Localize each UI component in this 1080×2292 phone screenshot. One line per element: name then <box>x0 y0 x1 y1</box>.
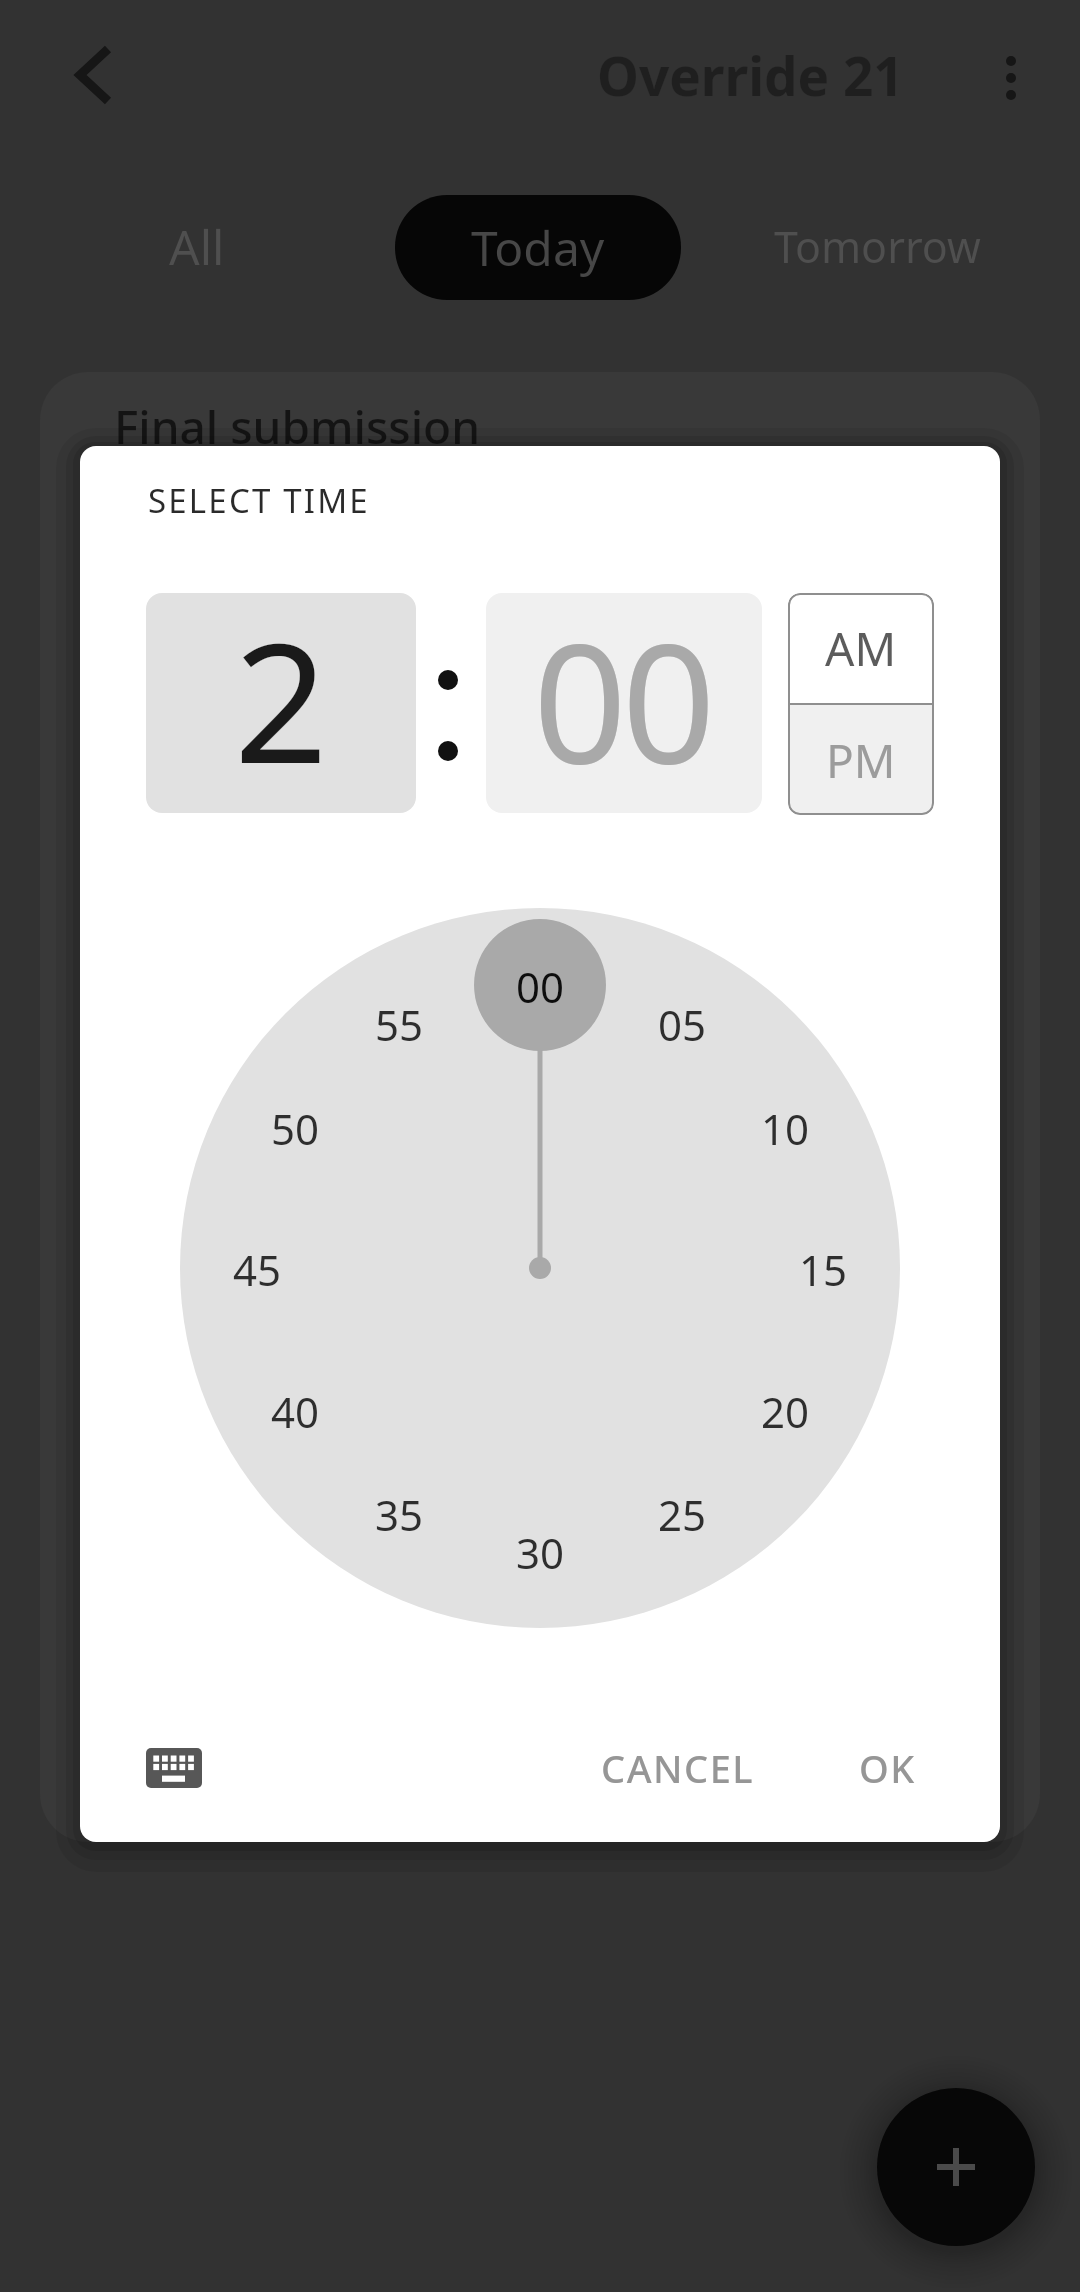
staticText: CANCEL <box>601 1742 755 1794</box>
button[interactable]: All <box>127 211 267 281</box>
staticText: SELECT TIME <box>148 478 370 523</box>
staticText: 50 <box>271 1100 320 1154</box>
staticText: 30 <box>516 1524 565 1578</box>
button[interactable]: 2 <box>146 593 416 813</box>
staticText: Final submission <box>114 395 481 455</box>
staticText: Tomorrow <box>774 217 981 276</box>
staticText: 00 <box>533 593 711 808</box>
staticText: 40 <box>271 1383 320 1437</box>
staticText: 05 <box>658 996 707 1050</box>
button[interactable]: Tomorrow <box>752 211 1002 281</box>
staticText: OK <box>859 1742 916 1794</box>
staticText: 2 <box>234 593 328 808</box>
button[interactable] <box>981 48 1041 108</box>
button[interactable]: PM <box>788 705 934 815</box>
button[interactable]: CANCEL <box>563 1718 793 1818</box>
staticText: 55 <box>375 996 424 1050</box>
staticText: 20 <box>761 1383 810 1437</box>
button[interactable] <box>56 35 136 115</box>
button[interactable] <box>106 1708 242 1828</box>
button[interactable]: Today <box>395 195 681 300</box>
button[interactable]: 00 <box>486 593 762 813</box>
staticText: AM <box>825 617 897 680</box>
staticText: 10 <box>761 1100 810 1154</box>
staticText: 45 <box>233 1241 282 1295</box>
staticText: 25 <box>658 1486 707 1540</box>
button[interactable]: OK <box>822 1718 952 1818</box>
staticText: PM <box>826 729 896 792</box>
button[interactable] <box>877 2088 1035 2246</box>
staticText: All <box>169 214 225 279</box>
staticText: 35 <box>375 1486 424 1540</box>
staticText: Override 21 <box>597 39 904 111</box>
staticText: Today <box>471 215 605 280</box>
button[interactable]: Final submission <box>40 372 1040 1842</box>
staticText: 15 <box>799 1241 848 1295</box>
staticText: 00 <box>516 958 565 1012</box>
button[interactable]: AM <box>788 593 934 703</box>
